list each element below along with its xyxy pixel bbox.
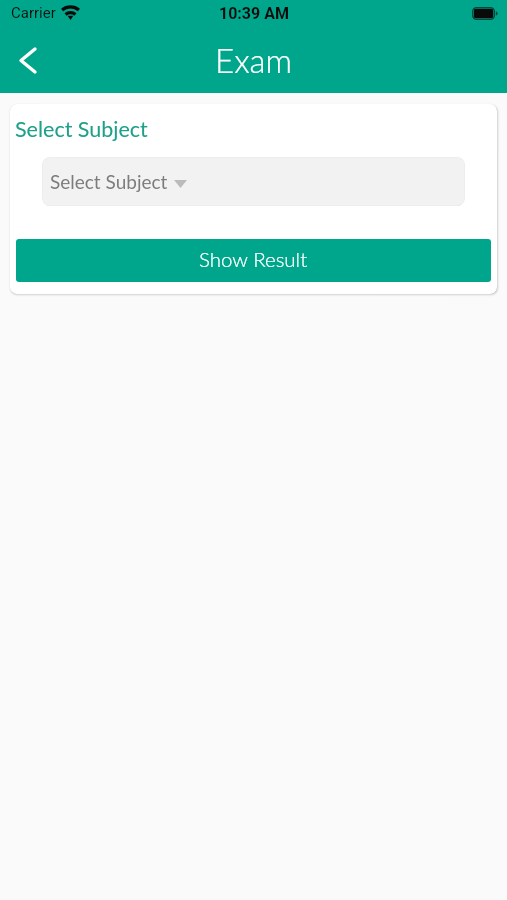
staticText: Select Subject bbox=[15, 116, 148, 142]
button[interactable]: Select Subject bbox=[42, 157, 465, 206]
button[interactable]: Show Result bbox=[16, 239, 491, 282]
staticText: Carrier bbox=[11, 4, 56, 22]
staticText: Select Subject bbox=[50, 170, 168, 193]
staticText: Exam bbox=[215, 40, 293, 80]
staticText: Show Result bbox=[199, 247, 308, 272]
staticText: 10:39 AM bbox=[219, 4, 289, 23]
button[interactable]: Back bbox=[6, 38, 50, 82]
